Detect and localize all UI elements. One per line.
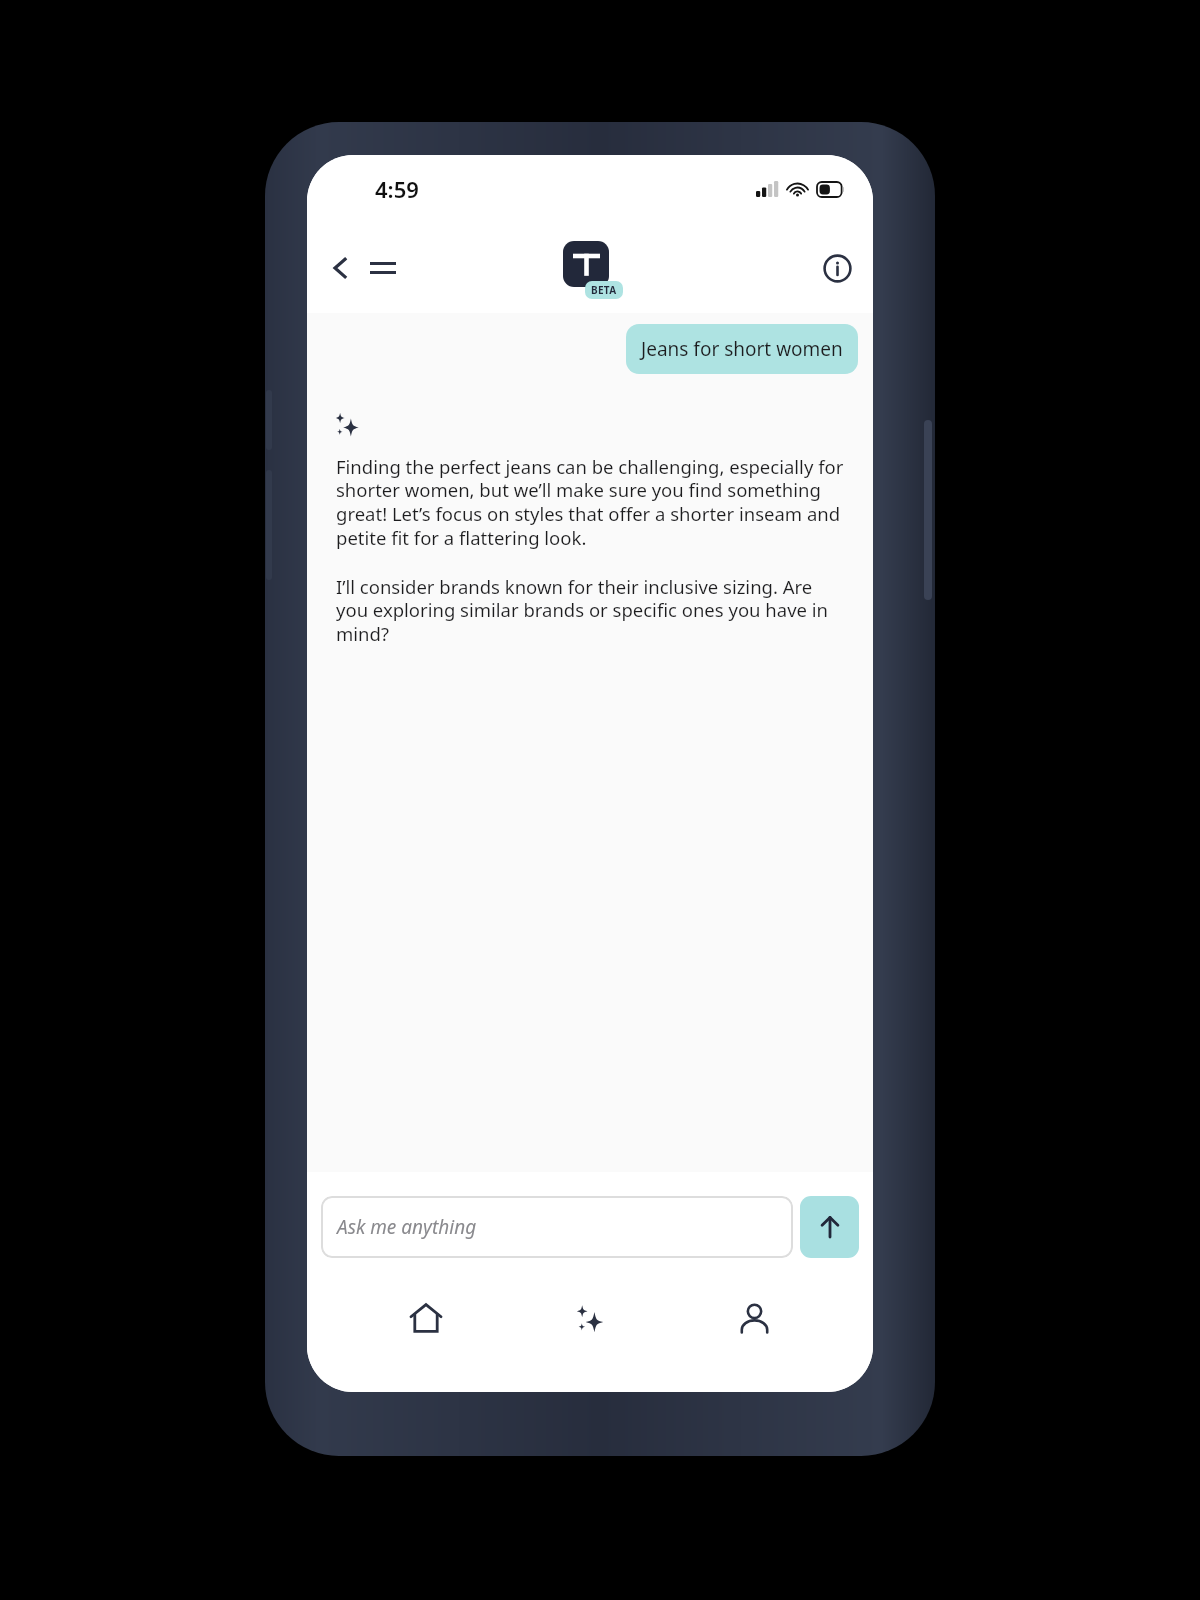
button[interactable]: Logo [559, 241, 621, 299]
button[interactable]: Jeans for short women [626, 324, 858, 374]
staticText: I’ll consider brands known for their inc… [336, 574, 844, 647]
button[interactable]: Information [813, 244, 861, 292]
button[interactable]: Menu [359, 244, 407, 292]
button[interactable]: Profile [709, 1282, 799, 1354]
button[interactable]: Back [317, 244, 365, 292]
staticText: 4:59 [375, 174, 419, 204]
button[interactable]: Ask me anything [321, 1196, 793, 1258]
staticText: Ask me anything [337, 1214, 477, 1240]
button[interactable]: Assistant [545, 1282, 635, 1354]
staticText: BETA [591, 283, 617, 297]
staticText: Finding the perfect jeans can be challen… [336, 454, 844, 551]
button[interactable]: Home [381, 1282, 471, 1354]
button[interactable]: Send [800, 1196, 859, 1258]
staticText: Jeans for short women [641, 336, 843, 362]
